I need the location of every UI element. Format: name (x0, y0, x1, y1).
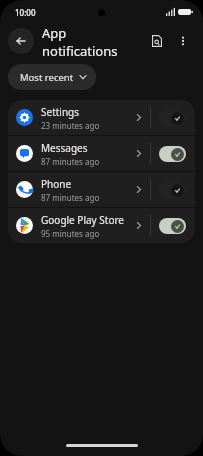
button[interactable]: Messages (8, 136, 195, 171)
staticText: Phone (41, 177, 72, 191)
staticText: Google Play Store (41, 213, 125, 227)
button[interactable]: Notifications off (159, 182, 186, 198)
button[interactable]: Notifications on (159, 218, 186, 234)
button[interactable]: Back (8, 28, 34, 54)
staticText: 10:00 (15, 7, 36, 18)
staticText: Messages (41, 141, 88, 155)
button[interactable]: Most recent (8, 64, 96, 90)
staticText: 95 minutes ago (41, 228, 100, 239)
button[interactable]: Search in page (145, 29, 169, 53)
staticText: Most recent (20, 71, 74, 84)
staticText: 87 minutes ago (41, 156, 100, 167)
staticText: Settings (41, 105, 80, 119)
button[interactable]: Settings (8, 100, 195, 135)
button[interactable]: Phone (8, 172, 195, 207)
staticText: App notifications (42, 24, 145, 58)
staticText: 87 minutes ago (41, 192, 100, 203)
button[interactable]: Google Play Store (8, 208, 195, 243)
button[interactable]: Notifications off (159, 110, 186, 126)
button[interactable]: More options (171, 29, 195, 53)
staticText: 23 minutes ago (41, 120, 100, 131)
button[interactable]: Notifications on (159, 146, 186, 162)
